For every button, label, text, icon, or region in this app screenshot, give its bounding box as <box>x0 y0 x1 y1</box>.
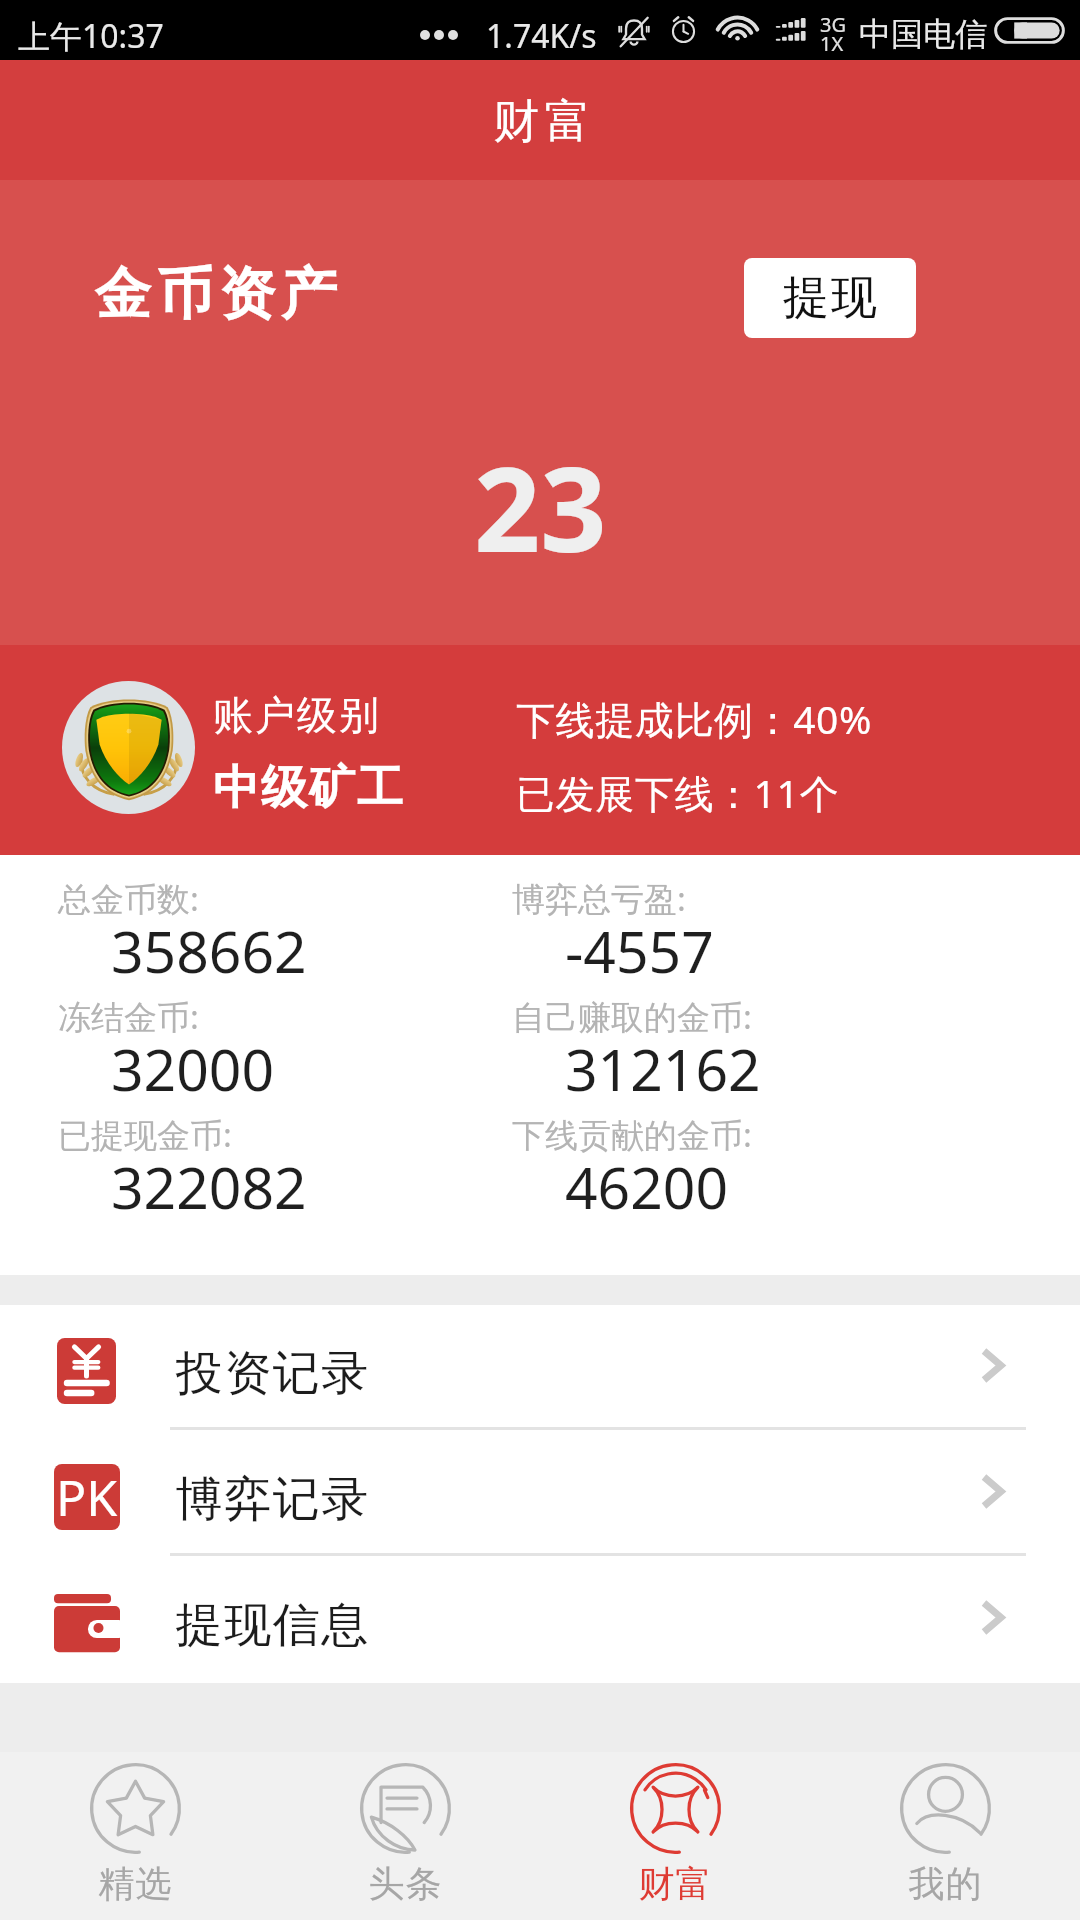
staticText: 23 <box>474 428 607 586</box>
button[interactable]: 精选 <box>0 1752 270 1920</box>
staticText: 我的 <box>908 1861 982 1906</box>
staticText: 投资记录 <box>175 1344 369 1403</box>
button[interactable]: 投资记录 <box>0 1305 1080 1431</box>
staticText: 博弈记录 <box>175 1470 369 1529</box>
staticText: 32000 <box>111 1030 275 1108</box>
other: 打开投资记录 <box>984 1351 1001 1380</box>
button[interactable]: 提现 <box>744 258 916 338</box>
staticText: 提现信息 <box>175 1596 369 1655</box>
staticText: 金币资产 <box>92 259 340 330</box>
staticText: 头条 <box>368 1861 442 1906</box>
staticText: -4557 <box>565 912 714 990</box>
staticText: 46200 <box>565 1148 729 1226</box>
staticText: 上午10:37 <box>18 14 164 58</box>
staticText: 下线贡献的金币: <box>512 1112 752 1157</box>
staticText: 已发展下线：11个 <box>516 766 840 819</box>
button[interactable]: 提现信息 <box>0 1557 1080 1683</box>
staticText: 冻结金币: <box>58 994 199 1039</box>
button[interactable]: 头条 <box>270 1752 540 1920</box>
staticText: 财富 <box>638 1861 712 1906</box>
button[interactable]: 财富 <box>540 1752 810 1920</box>
staticText: PK <box>56 1463 118 1529</box>
staticText: 自己赚取的金币: <box>512 994 752 1039</box>
staticText: 322082 <box>111 1148 307 1226</box>
staticText: 中级矿工 <box>212 759 404 817</box>
button[interactable]: 我的 <box>810 1752 1080 1920</box>
staticText: 下线提成比例：40% <box>516 692 873 745</box>
staticText: 1.74K/s <box>486 14 597 58</box>
staticText: 已提现金币: <box>58 1112 232 1157</box>
staticText: 账户级别 <box>212 690 380 740</box>
staticText: 中国电信 <box>859 14 987 54</box>
staticText: 358662 <box>111 912 307 990</box>
button[interactable]: PK <box>0 1431 1080 1557</box>
staticText: 3G <box>820 11 846 38</box>
staticText: 总金币数: <box>58 876 199 921</box>
staticText: 博弈总亏盈: <box>512 876 686 921</box>
staticText: 312162 <box>565 1030 761 1108</box>
other: 打开博弈记录 <box>984 1477 1001 1506</box>
staticText: 提现 <box>782 269 878 327</box>
staticText: 精选 <box>98 1861 172 1906</box>
staticText: 1X <box>820 30 844 57</box>
staticText: 财富 <box>491 93 593 151</box>
other: 打开提现信息 <box>984 1603 1001 1632</box>
